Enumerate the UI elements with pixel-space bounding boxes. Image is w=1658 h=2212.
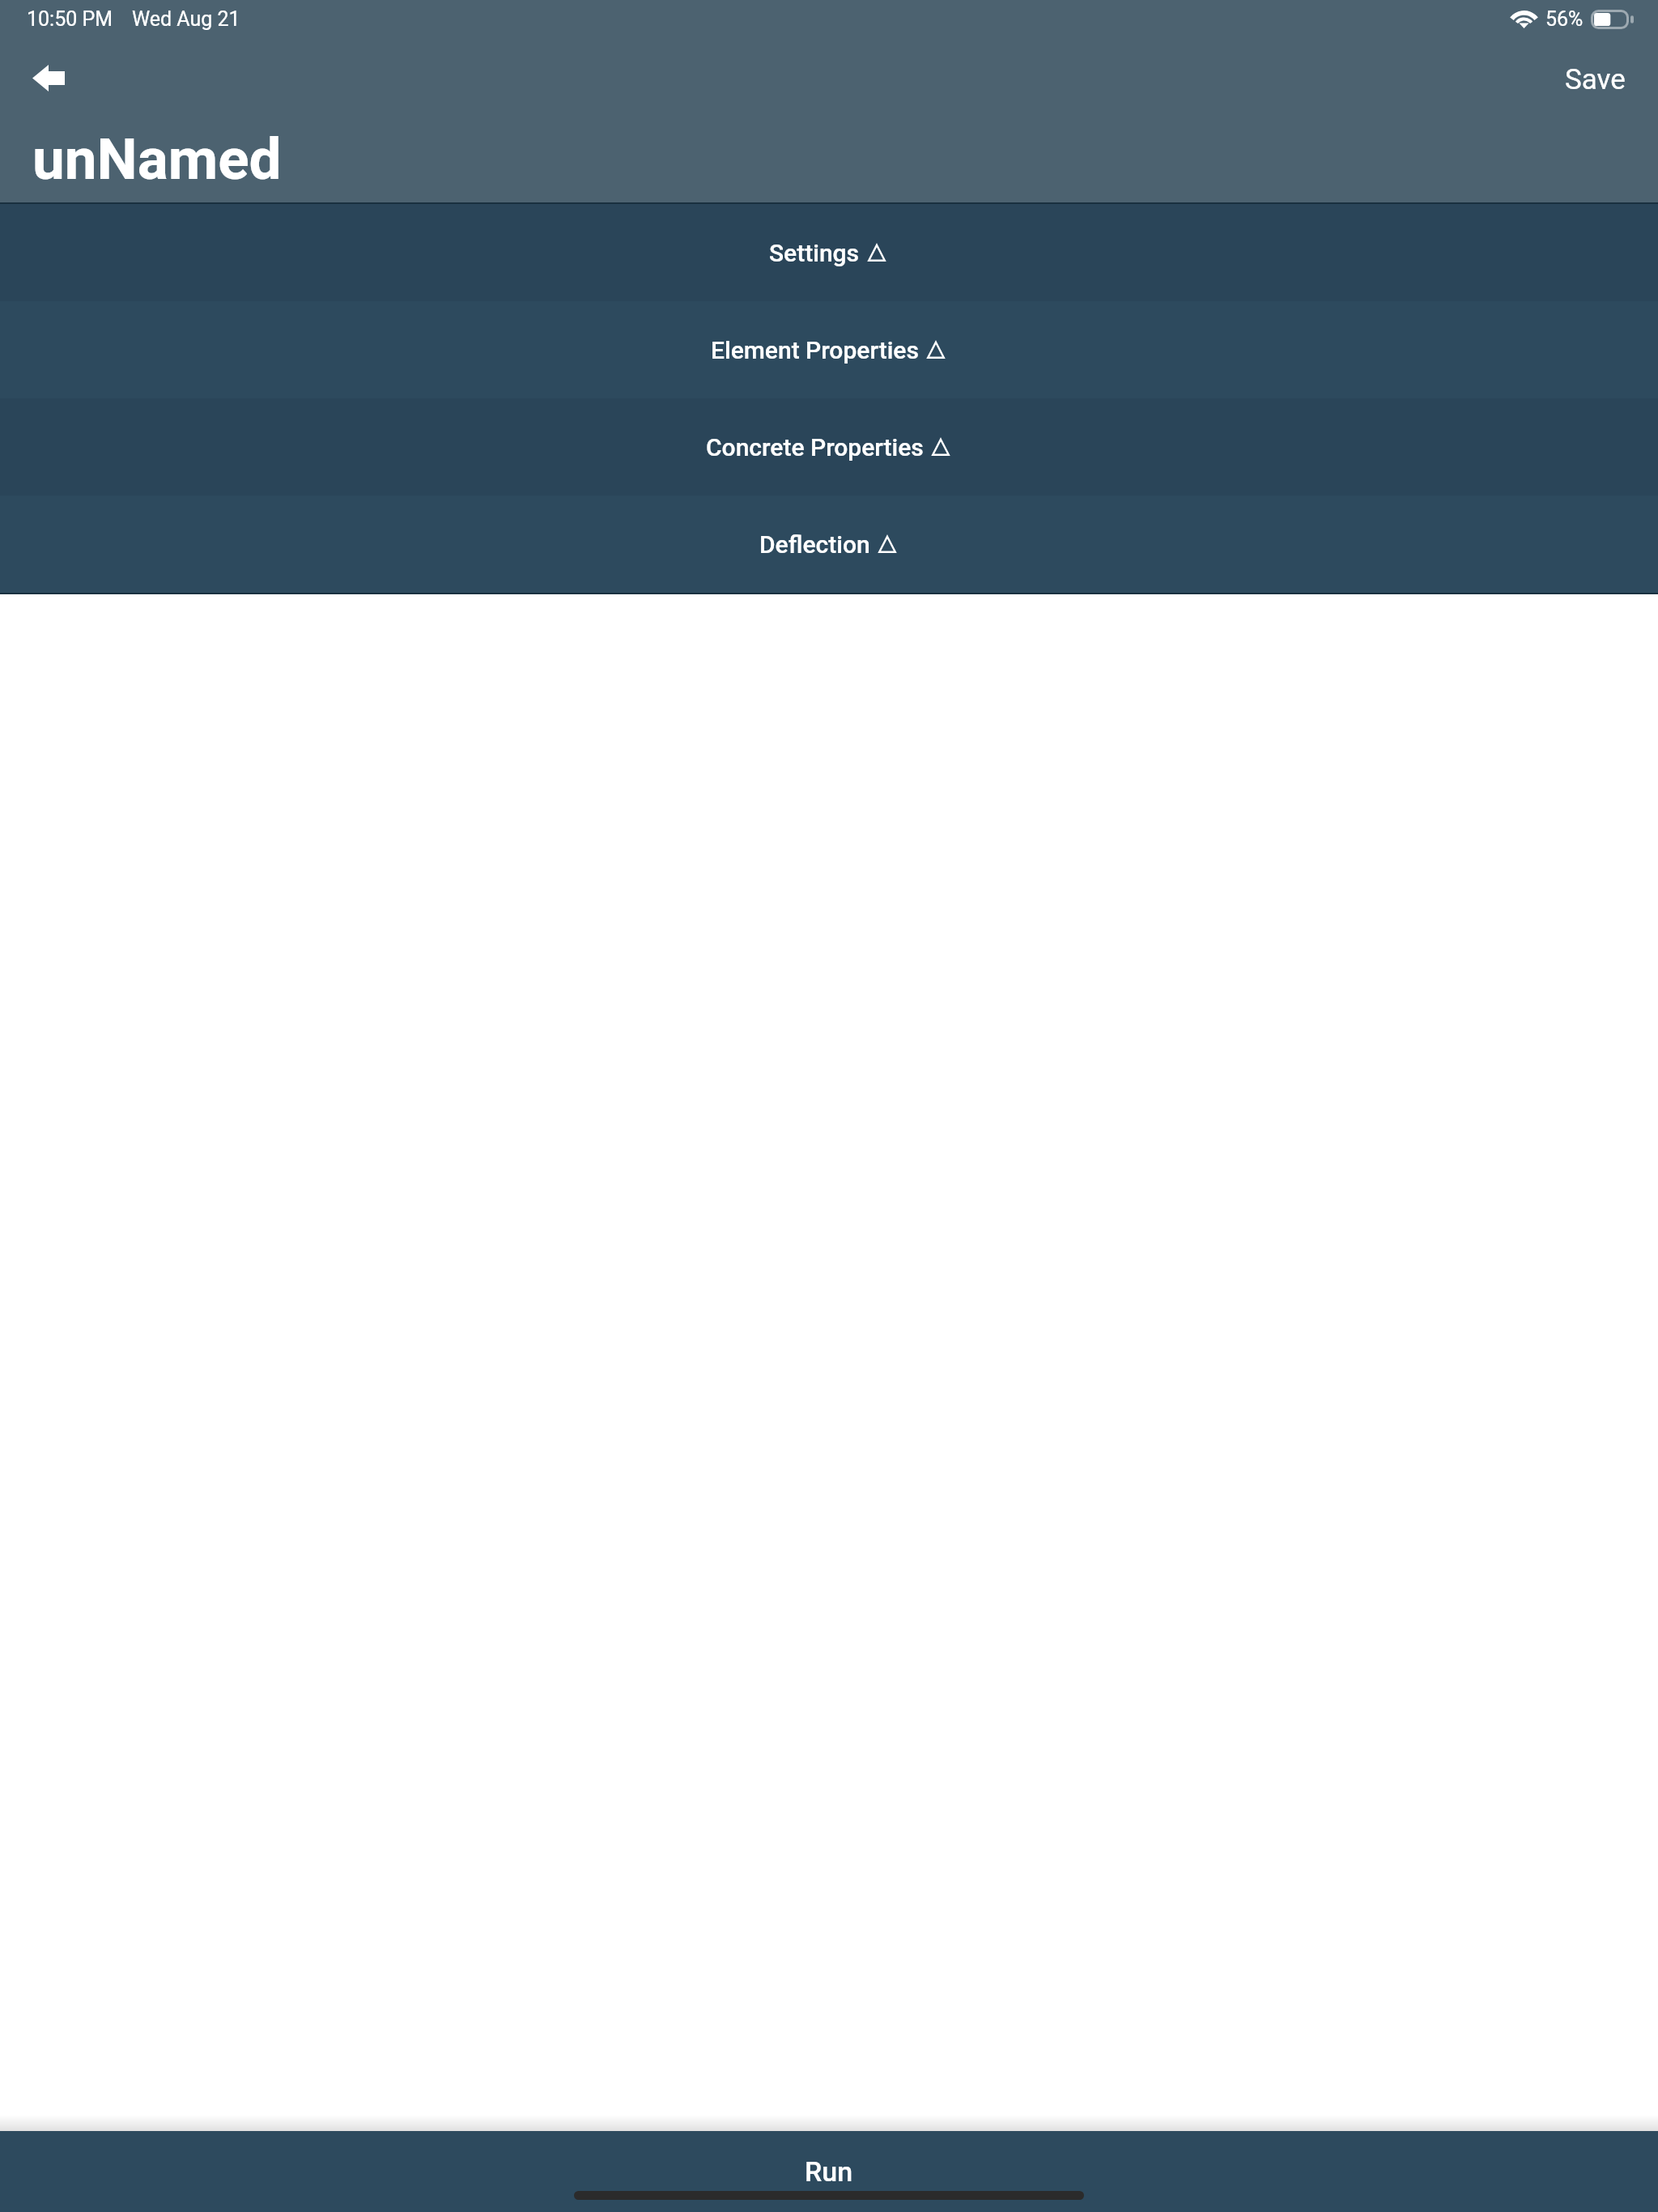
button[interactable]: Run	[0, 2131, 1658, 2212]
staticText: Deflection	[759, 530, 870, 559]
staticText: 10:50 PM	[27, 7, 113, 31]
button[interactable]: Save	[1533, 49, 1658, 110]
button[interactable]: Back	[13, 50, 84, 105]
staticText: Element Properties	[711, 336, 919, 364]
staticText: Settings	[769, 239, 860, 267]
button[interactable]: Element Properties	[0, 301, 1658, 398]
staticText: unNamed	[32, 125, 282, 193]
staticText: Run	[805, 2155, 853, 2188]
staticText: Concrete Properties	[706, 433, 924, 462]
staticText: Wed Aug 21	[132, 7, 240, 31]
button[interactable]: Concrete Properties	[0, 398, 1658, 496]
staticText: 56%	[1545, 7, 1584, 31]
staticText: Save	[1565, 63, 1626, 96]
button[interactable]: Settings	[0, 204, 1658, 301]
button[interactable]: Deflection	[0, 496, 1658, 593]
